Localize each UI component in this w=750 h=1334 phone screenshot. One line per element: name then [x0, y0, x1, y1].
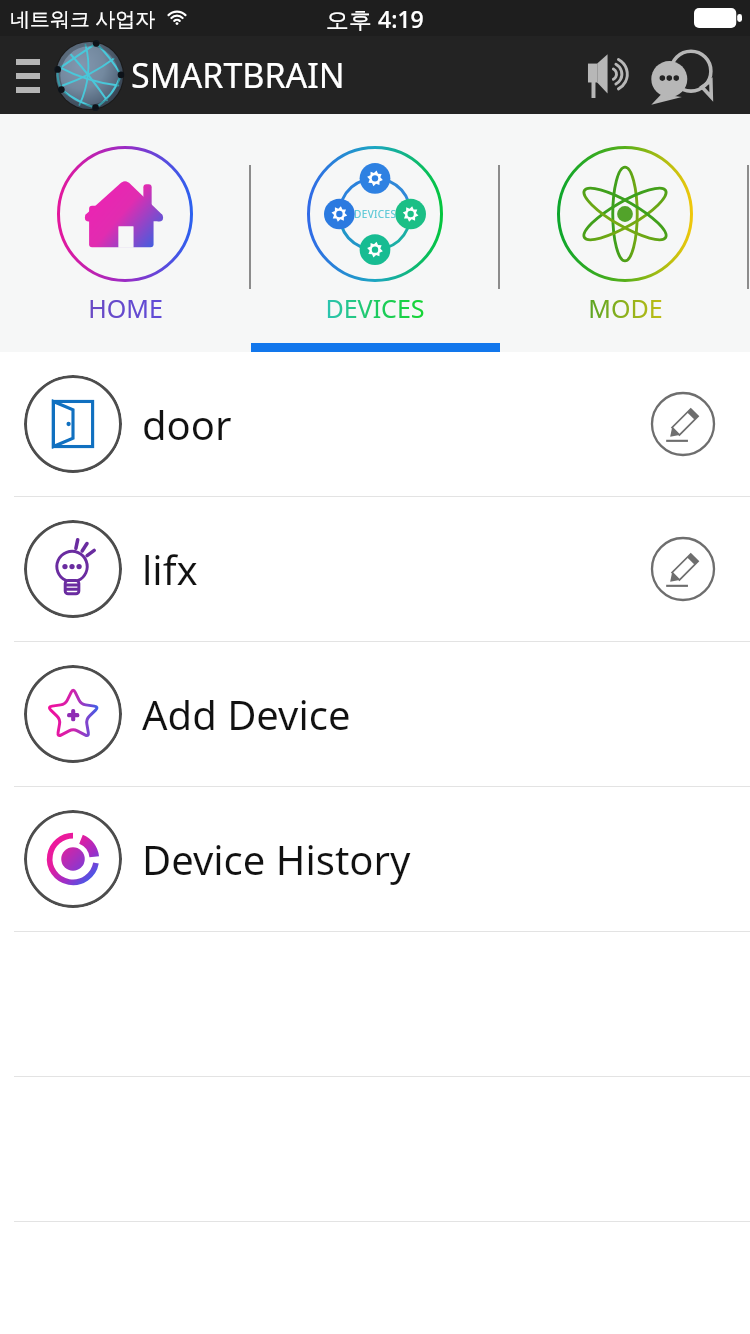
- button[interactable]: Edit lifx: [638, 524, 728, 614]
- staticText: Add Device: [142, 687, 351, 741]
- button[interactable]: DEVICES: [250, 114, 500, 352]
- staticText: Device History: [142, 832, 411, 886]
- staticText: DEVICES: [325, 291, 425, 325]
- button[interactable]: Device History: [0, 787, 750, 931]
- button[interactable]: lifx: [0, 497, 750, 641]
- button[interactable]: MODE: [500, 114, 750, 352]
- staticText: MODE: [588, 291, 663, 325]
- staticText: 오후 4:19: [326, 3, 424, 34]
- staticText: SMARTBRAIN: [131, 52, 345, 98]
- button[interactable]: HOME: [0, 114, 250, 352]
- staticText: 네트워크 사업자: [10, 5, 156, 32]
- staticText: DEVICES: [354, 207, 397, 221]
- staticText: door: [142, 397, 232, 451]
- staticText: lifx: [142, 542, 198, 596]
- staticText: HOME: [88, 291, 163, 325]
- button[interactable]: Messages: [642, 36, 720, 114]
- button[interactable]: door: [0, 352, 750, 496]
- button[interactable]: Announcements: [574, 36, 642, 114]
- button[interactable]: Add Device: [0, 642, 750, 786]
- button[interactable]: Menu: [0, 36, 56, 114]
- button[interactable]: Edit door: [638, 379, 728, 469]
